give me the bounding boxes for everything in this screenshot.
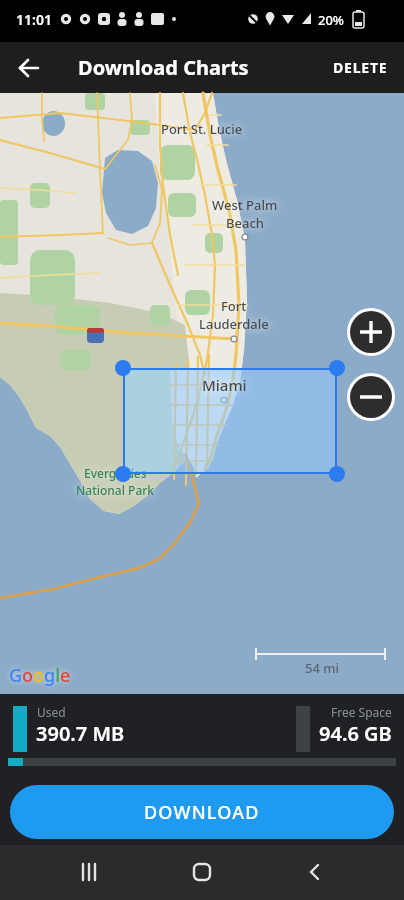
- staticText: 11:01: [16, 10, 52, 29]
- button[interactable]: [123, 368, 337, 474]
- staticText: DOWNLOAD: [144, 800, 260, 825]
- staticText: Download Charts: [78, 54, 249, 81]
- button[interactable]: [184, 854, 220, 890]
- staticText: Fort: [221, 297, 247, 315]
- staticText: Lauderdale: [199, 315, 269, 333]
- button[interactable]: [347, 373, 395, 421]
- staticText: 390.7 MB: [36, 720, 125, 747]
- button[interactable]: [12, 51, 46, 85]
- button[interactable]: [297, 854, 333, 890]
- staticText: Beach: [226, 214, 264, 232]
- staticText: Google: [9, 663, 71, 688]
- staticText: Everglades: [84, 465, 147, 481]
- staticText: West Palm: [212, 196, 278, 214]
- staticText: National Park: [76, 482, 155, 498]
- button[interactable]: [347, 308, 395, 356]
- staticText: 20%: [318, 11, 344, 29]
- staticText: DELETE: [333, 58, 388, 77]
- staticText: Port St. Lucie: [161, 120, 243, 138]
- button[interactable]: DOWNLOAD: [10, 785, 394, 839]
- staticText: 94.6 GB: [319, 720, 392, 747]
- staticText: 54 mi: [305, 659, 340, 677]
- button[interactable]: DELETE: [327, 52, 394, 83]
- staticText: Miami: [202, 375, 247, 395]
- button[interactable]: [72, 854, 108, 890]
- staticText: Free Space: [331, 704, 392, 720]
- staticText: Used: [37, 704, 66, 720]
